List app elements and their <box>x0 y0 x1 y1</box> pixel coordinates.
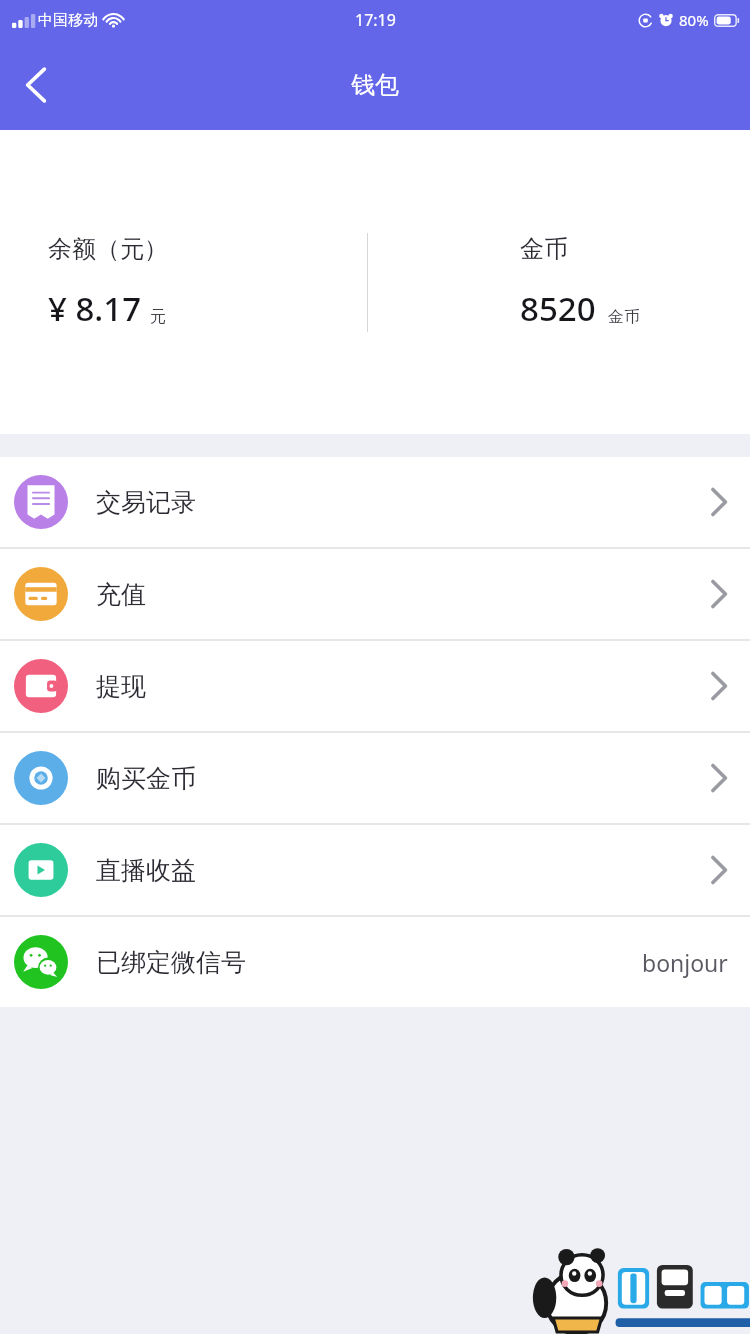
button[interactable]: 充值 <box>0 549 750 639</box>
staticText: 充值 <box>96 579 146 610</box>
staticText: 余额（元） <box>48 234 168 264</box>
staticText: 购买金币 <box>96 763 196 794</box>
staticText: 提现 <box>96 671 146 702</box>
button[interactable]: 提现 <box>0 641 750 731</box>
staticText: 交易记录 <box>96 487 196 518</box>
staticText: 中国移动 <box>38 11 98 30</box>
button[interactable]: Back <box>0 49 72 121</box>
button[interactable]: 购买金币 <box>0 733 750 823</box>
staticText: 80% <box>679 10 709 30</box>
staticText: 直播收益 <box>96 855 196 886</box>
staticText: ¥ 8.17 <box>48 286 142 331</box>
staticText: 17:19 <box>355 9 396 31</box>
staticText: 元 <box>150 307 166 327</box>
button[interactable]: 直播收益 <box>0 825 750 915</box>
staticText: 8520 <box>520 286 596 331</box>
staticText: 金币 <box>608 307 640 327</box>
button[interactable]: 已绑定微信号 <box>0 917 750 1007</box>
staticText: bonjour <box>642 947 728 978</box>
staticText: 金币 <box>520 234 568 264</box>
staticText: 钱包 <box>351 70 399 100</box>
button[interactable]: 交易记录 <box>0 457 750 547</box>
staticText: 已绑定微信号 <box>96 947 246 978</box>
